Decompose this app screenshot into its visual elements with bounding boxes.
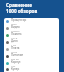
button[interactable]: Процессор [4,18,59,25]
button[interactable]: Плата [4,46,59,53]
staticText: Память [11,32,22,36]
staticText: Питание [11,53,24,57]
staticText: NVIDIA [11,29,20,32]
staticText: Видео [11,25,20,29]
staticText: Процессор [11,18,27,22]
staticText: Кулер [11,67,20,71]
staticText: ASUS [11,50,18,53]
staticText: Сравнение [6,2,32,8]
button[interactable]: Кулер [4,67,59,72]
staticText: Корпус [11,60,21,64]
button[interactable]: Память [4,32,59,39]
button[interactable]: Диск [4,39,59,46]
staticText: ATX [11,64,16,67]
staticText: 1000 обзоров [6,8,38,14]
button[interactable]: Видео [4,25,59,32]
button[interactable]: Корпус [4,60,59,67]
staticText: Диск [11,39,18,43]
staticText: 650 Вт [11,57,19,60]
staticText: 1 ТБ [11,43,17,46]
staticText: 16 ГБ [11,36,18,39]
staticText: Intel [11,22,17,25]
button[interactable]: Питание [4,53,59,60]
staticText: Плата [11,46,20,50]
